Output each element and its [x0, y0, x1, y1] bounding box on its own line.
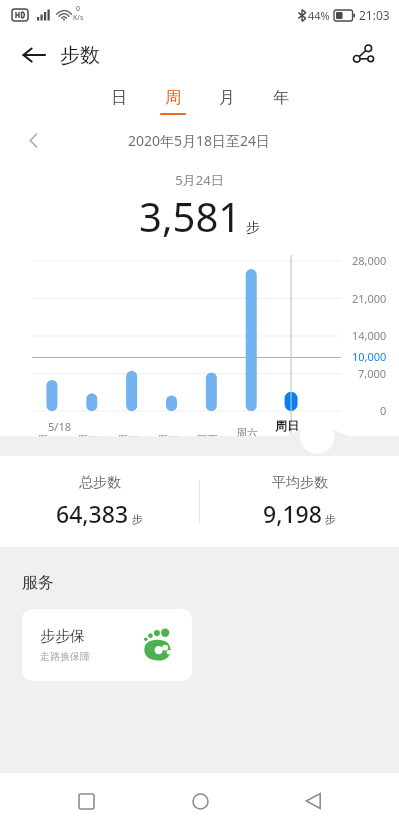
staticText: 总步数 [79, 474, 121, 492]
button[interactable]: Share [341, 33, 385, 77]
button[interactable]: Back [0, 30, 110, 80]
button[interactable]: Home [172, 773, 228, 829]
button[interactable]: 年 [254, 80, 308, 121]
staticText: 走路换保障 [40, 650, 90, 663]
staticText: 步数 [60, 43, 100, 68]
staticText: 44% [308, 8, 330, 23]
staticText: 周二 [77, 433, 99, 447]
staticText: 64,383 [56, 498, 129, 529]
staticText: 3,581 [139, 189, 242, 243]
button[interactable]: Recent apps [58, 773, 114, 829]
staticText: 周三 [117, 433, 139, 447]
staticText: 步 [246, 219, 260, 237]
button[interactable]: 平均步数 [200, 470, 399, 533]
staticText: 0 [76, 4, 81, 14]
other: Back [22, 43, 46, 67]
staticText: 步 [132, 512, 143, 526]
staticText: 5/18 [48, 419, 71, 434]
staticText: 日 [111, 88, 127, 108]
staticText: 7,000 [358, 366, 387, 381]
staticText: 周日 [275, 418, 299, 433]
staticText: 周 [165, 88, 181, 108]
staticText: 10,000 [352, 349, 387, 364]
staticText: 平均步数 [272, 474, 328, 492]
button[interactable]: Previous week [16, 123, 50, 157]
staticText: 步 [325, 512, 336, 526]
button[interactable]: Back [285, 773, 341, 829]
staticText: 21:03 [359, 7, 390, 23]
staticText: 步步保 [40, 627, 85, 646]
button[interactable]: 周 [146, 80, 200, 121]
staticText: 2020年5月18日至24日 [128, 131, 271, 150]
button[interactable]: 总步数 [0, 470, 199, 533]
staticText: 14,000 [352, 328, 387, 343]
staticText: K/s [73, 13, 84, 23]
staticText: 5月24日 [0, 171, 399, 189]
staticText: 9,198 [263, 498, 322, 529]
staticText: 周四 [157, 433, 179, 447]
staticText: 服务 [22, 573, 54, 593]
staticText: 28,000 [352, 253, 387, 268]
staticText: 周六 [236, 426, 258, 440]
staticText: 周一 [37, 433, 59, 447]
staticText: 月 [219, 88, 235, 108]
staticText: 21,000 [352, 291, 387, 306]
staticText: 年 [273, 88, 289, 108]
button[interactable]: 步步保 [22, 609, 192, 681]
button[interactable]: 月 [200, 80, 254, 121]
staticText: 周五 [196, 433, 218, 447]
staticText: 0 [380, 403, 387, 418]
button[interactable]: 日 [92, 80, 146, 121]
